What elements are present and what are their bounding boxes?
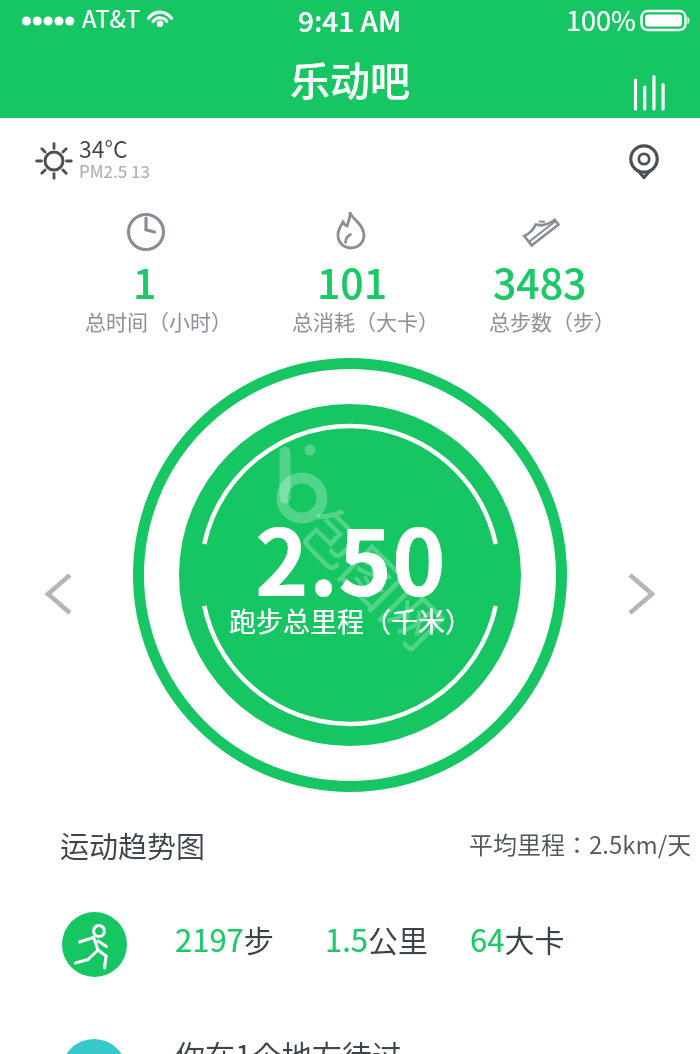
button[interactable] <box>618 60 682 116</box>
button[interactable] <box>40 898 660 978</box>
staticText: 平均里程：2.5km/天 <box>469 826 692 854</box>
staticText: 乐动吧 <box>290 50 410 100</box>
staticText: 9:41 AM <box>298 0 402 36</box>
staticText: 34°C <box>79 131 128 157</box>
staticText: 3483 <box>493 251 587 295</box>
staticText: 总时间（小时） <box>85 306 232 334</box>
button[interactable] <box>622 135 670 183</box>
staticText: 包图网 <box>301 486 464 649</box>
staticText: 你在1个地方待过 <box>175 1032 402 1054</box>
staticText: 1.5公里 <box>325 916 429 950</box>
staticText: 101 <box>317 251 388 295</box>
button[interactable] <box>32 567 86 621</box>
staticText: 总消耗（大卡） <box>292 306 439 334</box>
staticText: 2197步 <box>175 916 274 950</box>
staticText: 2.50 <box>255 490 446 588</box>
staticText: 运动趋势图 <box>60 824 206 856</box>
button[interactable] <box>40 1020 660 1054</box>
staticText: AT&T <box>82 0 141 34</box>
staticText: 总步数（步） <box>489 306 615 334</box>
button[interactable] <box>614 567 668 621</box>
staticText: 64大卡 <box>470 916 565 950</box>
staticText: 跑步总里程（千米） <box>229 601 472 631</box>
staticText: 100% <box>566 0 636 36</box>
staticText: 1 <box>133 251 157 295</box>
staticText: PM2.5 13 <box>79 158 150 180</box>
